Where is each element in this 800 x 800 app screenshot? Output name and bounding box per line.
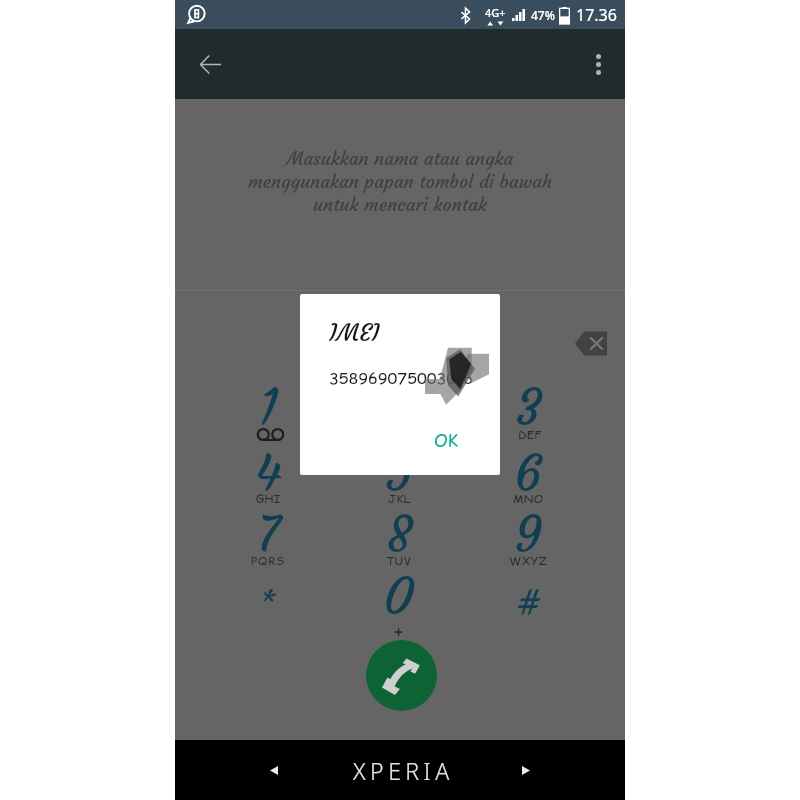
button[interactable]: 3 (473, 376, 583, 440)
staticText: TUV (386, 552, 412, 566)
staticText: 8 (386, 503, 413, 566)
button[interactable]: 9 (473, 503, 583, 567)
staticText: 9 (514, 503, 542, 566)
staticText: 2 (386, 376, 413, 439)
button[interactable]: 6 (473, 442, 583, 506)
button[interactable]: 1 (213, 376, 323, 440)
staticText: IMEI (329, 318, 380, 348)
staticText: # (516, 582, 541, 625)
button[interactable]: 7 (213, 503, 323, 567)
staticText: OK (434, 429, 458, 453)
staticText: 1 (258, 376, 279, 439)
button[interactable]: 8 (344, 503, 454, 567)
button[interactable]: 4 (213, 442, 323, 506)
staticText: 17.36 (576, 4, 617, 26)
staticText: 7 (256, 503, 280, 566)
button[interactable]: Back (249, 745, 299, 795)
staticText: GHI (256, 490, 281, 504)
staticText: PQRS (251, 552, 285, 566)
button[interactable]: OK (426, 427, 466, 455)
staticText: MNO (513, 490, 544, 504)
button[interactable]: Backspace (565, 323, 618, 364)
staticText: 4 (255, 442, 282, 505)
button[interactable]: # (473, 565, 583, 629)
staticText: * (259, 582, 277, 625)
staticText: JKL (388, 490, 411, 504)
staticText: 358969075003016 (329, 367, 473, 389)
staticText: DEF (518, 426, 542, 440)
staticText: 4G+ (485, 5, 506, 20)
button[interactable]: More options (576, 42, 620, 86)
staticText: 47% (531, 7, 555, 23)
button[interactable]: 5 (344, 442, 454, 506)
button[interactable]: Back (188, 42, 232, 86)
staticText: 0 (383, 565, 415, 628)
staticText: 3 (515, 376, 542, 439)
staticText: WXYZ (509, 552, 547, 566)
button[interactable]: 2 (344, 376, 454, 440)
staticText: 5 (385, 442, 413, 505)
staticText: + (394, 618, 404, 638)
staticText: 6 (514, 442, 542, 505)
button[interactable]: * (213, 565, 323, 629)
staticText: XPERIA (353, 755, 454, 786)
button[interactable]: Call (366, 640, 437, 711)
button[interactable]: 0 (344, 565, 454, 629)
button[interactable]: Recents (501, 745, 551, 795)
staticText: Masukkan nama atau angka menggunakan pap… (175, 147, 625, 216)
